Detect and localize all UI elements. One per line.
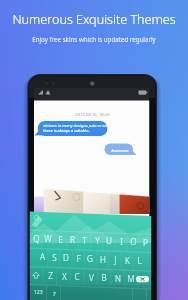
button[interactable]: J [109,251,121,267]
button[interactable]: N [111,270,125,286]
button[interactable]: K [121,252,133,268]
button[interactable]: 123 [30,286,47,299]
staticText: 123 [34,289,43,296]
staticText: S [52,252,57,263]
staticText: F [76,253,81,264]
button[interactable]: Awesome [105,144,134,156]
staticText: B [101,272,107,283]
staticText: E [58,234,63,245]
staticText: Enjoy free skins which is updated regula… [0,35,188,43]
button[interactable]: H [97,251,109,267]
button[interactable]: X [57,268,71,284]
button[interactable]: Y [91,232,103,248]
staticText: R [70,234,75,245]
staticText: Awesome [111,148,129,153]
button[interactable]: B [97,269,111,285]
button[interactable]: Z [43,267,57,283]
button[interactable]: A [36,248,48,264]
staticText: H [100,254,106,265]
button[interactable]: R [66,231,78,247]
button[interactable]: M [124,270,138,286]
button[interactable]: W [42,230,54,246]
staticText: 2019.08.16 18:26 [75,112,110,118]
staticText: stickers in many designs,cute or cool, t… [43,123,108,134]
button[interactable]: U [103,232,115,248]
staticText: V [89,272,94,283]
staticText: T [82,235,87,246]
button[interactable]: C [70,268,84,284]
button[interactable]: V [84,269,98,285]
staticText: P [143,237,148,248]
staticText: N [115,273,121,284]
staticText: Z [48,270,53,281]
button[interactable]: stickers in many designs,cute or cool, t… [38,121,108,136]
staticText: X [62,271,67,282]
button[interactable]: L [133,252,145,268]
staticText: A [40,251,45,262]
staticText: ? [53,290,56,298]
button[interactable]: ? [47,287,61,300]
button[interactable]: T [78,232,90,248]
staticText: O [130,236,137,247]
staticText: Numerous Exquisite Themes [0,11,188,28]
staticText: K [125,255,130,266]
button[interactable]: O [127,233,139,249]
button[interactable]: F [72,250,84,266]
button[interactable]: Q [30,230,42,246]
button[interactable]: D [60,249,72,265]
staticText: M [127,273,135,284]
staticText: Y [95,235,100,246]
button[interactable]: E [54,231,66,247]
button[interactable]: I [115,233,127,249]
button[interactable]: S [48,249,60,265]
staticText: G [87,253,93,264]
button[interactable]: P [139,234,151,250]
staticText: Q [33,233,40,244]
staticText: C [74,271,80,282]
staticText: W [44,233,52,244]
button[interactable]: G [84,250,96,266]
staticText: U [106,235,112,246]
staticText: L [137,255,142,266]
staticText: I [120,236,123,247]
staticText: D [63,252,69,263]
staticText: J [114,254,117,265]
